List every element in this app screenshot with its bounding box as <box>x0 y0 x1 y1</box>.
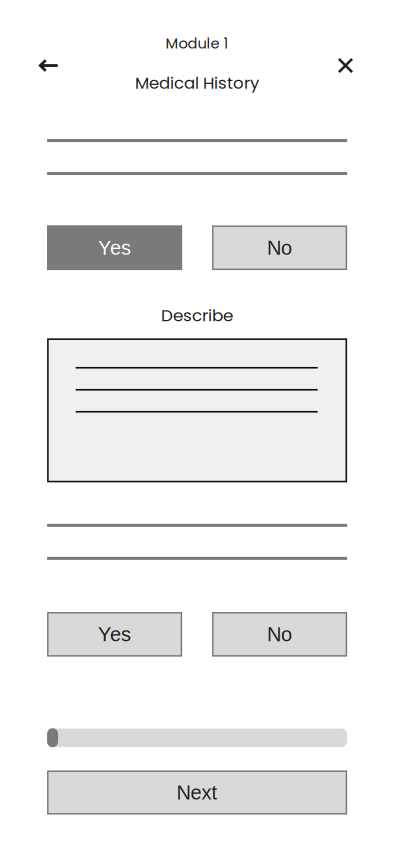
staticText: No <box>267 623 292 645</box>
button[interactable]: Close <box>325 48 365 82</box>
staticText: Medical History <box>135 71 259 94</box>
staticText: Yes <box>98 623 131 645</box>
button[interactable]: No <box>212 612 347 657</box>
staticText: Module 1 <box>166 33 229 53</box>
staticText: Next <box>177 781 218 804</box>
staticText: Describe <box>161 303 233 327</box>
button[interactable]: Yes <box>47 612 182 657</box>
button[interactable]: Yes <box>47 225 182 270</box>
staticText: Yes <box>98 237 131 259</box>
button[interactable]: No <box>212 225 347 270</box>
button[interactable]: Next <box>47 770 347 814</box>
button[interactable]: Back <box>29 48 69 82</box>
staticText: No <box>267 237 292 259</box>
